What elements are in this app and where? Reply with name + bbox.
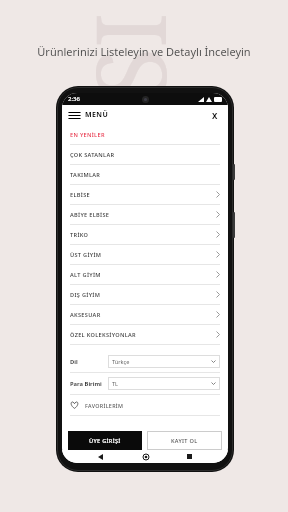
staticText: Dil <box>70 358 108 366</box>
staticText: EN YENİLER <box>70 131 105 139</box>
button[interactable]: TRİKO <box>62 225 228 245</box>
button[interactable]: ÇOK SATANLAR <box>62 145 228 165</box>
button[interactable]: ÖZEL KOLEKSİYONLAR <box>62 325 228 345</box>
staticText: X <box>212 110 218 121</box>
staticText: 2:36 <box>68 95 80 103</box>
staticText: ÜYE GİRİŞİ <box>89 437 121 445</box>
staticText: ÇOK SATANLAR <box>70 151 115 159</box>
button[interactable]: KAYIT OL <box>147 431 222 450</box>
staticText: ÜST GİYİM <box>70 251 102 259</box>
staticText: ÖZEL KOLEKSİYONLAR <box>70 331 136 339</box>
staticText: Türkçe <box>112 358 130 366</box>
button[interactable]: ABİYE ELBİSE <box>62 205 228 225</box>
other: Open menu <box>69 111 80 120</box>
staticText: ALT GİYİM <box>70 271 101 279</box>
staticText: TL <box>112 380 119 388</box>
staticText: AKSESUAR <box>70 311 101 319</box>
button[interactable]: Back <box>94 450 107 463</box>
button[interactable]: ALT GİYİM <box>62 265 228 285</box>
staticText: KAYIT OL <box>171 437 198 445</box>
staticText: DIŞ GİYİM <box>70 291 101 299</box>
staticText: Para Birimi <box>70 380 108 388</box>
staticText: FAVORİLERİM <box>85 402 124 409</box>
button[interactable]: Open menu <box>69 110 109 120</box>
button[interactable]: Home <box>139 450 152 463</box>
button[interactable]: EN YENİLER <box>62 125 228 145</box>
button[interactable]: DIŞ GİYİM <box>62 285 228 305</box>
button[interactable]: TL <box>108 377 220 390</box>
staticText: MENÜ <box>85 110 109 120</box>
staticText: ELBİSE <box>70 191 90 199</box>
button[interactable]: AKSESUAR <box>62 305 228 325</box>
button[interactable]: Close <box>209 109 221 121</box>
button[interactable]: TAKIMLAR <box>62 165 228 185</box>
button[interactable]: ÜST GİYİM <box>62 245 228 265</box>
staticText: TRİKO <box>70 231 89 239</box>
staticText: OUTSI <box>63 12 173 299</box>
button[interactable]: Recent apps <box>183 450 196 463</box>
button[interactable]: FAVORİLERİM <box>62 395 228 415</box>
button[interactable]: ÜYE GİRİŞİ <box>68 431 142 450</box>
staticText: ABİYE ELBİSE <box>70 211 110 219</box>
button[interactable]: ELBİSE <box>62 185 228 205</box>
staticText: Ürünlerinizi Listeleyin ve Detaylı İncel… <box>37 44 251 59</box>
button[interactable]: Türkçe <box>108 355 220 368</box>
staticText: TAKIMLAR <box>70 171 101 179</box>
